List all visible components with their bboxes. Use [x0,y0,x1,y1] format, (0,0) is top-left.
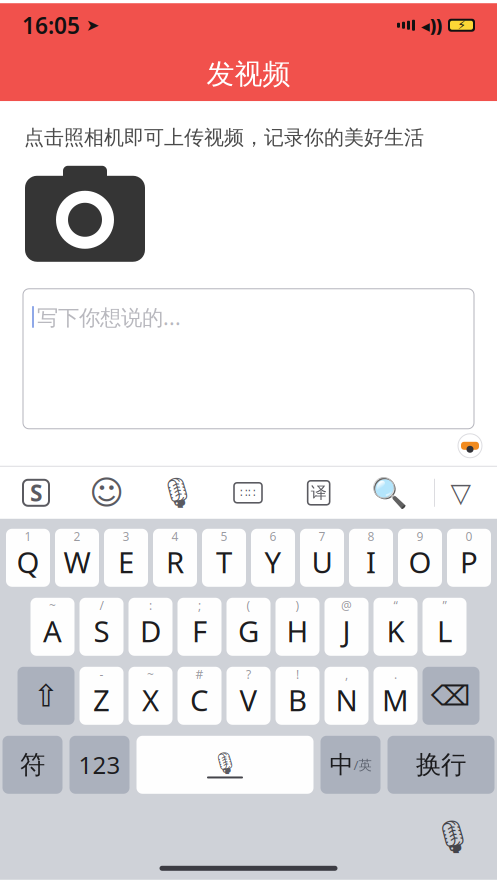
staticText: /英 [353,756,371,774]
staticText: K [386,611,404,650]
button[interactable]: 输入法设置 [10,467,62,519]
staticText: I [366,542,376,581]
staticText: B [288,680,307,719]
button[interactable]: 9 [398,529,442,587]
staticText: W [63,542,90,581]
staticText: S [30,478,42,508]
button[interactable]: ~ [30,598,74,656]
staticText: T [216,542,232,581]
button[interactable]: 删除 [422,667,479,725]
staticText: 译 [311,483,327,503]
staticText: # [195,666,203,682]
staticText: ⚡︎ [457,18,465,32]
button[interactable]: 空格 [136,736,313,794]
staticText: Y [264,542,281,581]
button[interactable]: ~ [128,667,172,725]
staticText: . [394,666,397,682]
button[interactable]: 6 [251,529,295,587]
staticText: C [190,680,209,719]
staticText: ! [296,666,299,682]
staticText: 8 [367,528,374,544]
button[interactable]: / [79,598,123,656]
button[interactable]: 1 [6,529,50,587]
staticText: 点击照相机即可上传视频，记录你的美好生活 [24,125,424,150]
staticText: - [99,666,103,682]
staticText: 换行 [416,749,466,780]
staticText: ☺ [89,474,124,512]
button[interactable]: 收起键盘 [435,467,487,519]
staticText: P [460,542,478,581]
button[interactable]: # [177,667,221,725]
button[interactable]: 7 [300,529,344,587]
staticText: F [192,611,207,650]
button[interactable]: ; [177,598,221,656]
staticText: 🎙 [211,751,238,775]
staticText: M [382,680,409,719]
button[interactable]: 语音输入 [151,467,203,519]
staticText: G [238,611,259,650]
button[interactable]: 123 [69,736,129,794]
button[interactable]: @ [324,598,368,656]
staticText: D [140,611,161,650]
button[interactable]: 3 [104,529,148,587]
staticText: 9 [416,528,423,544]
staticText: ⇧ [33,678,59,713]
staticText: / [99,597,103,613]
staticText: Q [16,542,39,581]
button[interactable]: 中英切换 [320,736,380,794]
staticText: ? [246,666,251,682]
staticText: 🔍 [371,476,408,509]
button[interactable]: . [373,667,417,725]
staticText: ◂)) [421,14,442,37]
staticText: 6 [269,528,276,544]
staticText: U [311,542,332,581]
button[interactable]: 4 [153,529,197,587]
staticText: O [408,542,431,581]
staticText: 3 [122,528,129,544]
button[interactable]: 符 [2,736,62,794]
button[interactable]: 翻译 [293,467,345,519]
staticText: V [239,680,257,719]
staticText: 中 [329,750,353,779]
staticText: “ [393,597,397,613]
staticText: ~ [49,597,56,613]
button[interactable]: 搜索 [363,467,415,519]
button[interactable]: 8 [349,529,393,587]
button[interactable]: 键盘布局 [222,467,274,519]
staticText: Z [93,680,110,719]
button[interactable]: 5 [202,529,246,587]
staticText: ; [198,597,201,613]
staticText: ▽ [450,478,471,508]
button[interactable]: 换行 [387,736,494,794]
staticText: S [93,611,109,650]
staticText: 写下你想说的... [37,303,181,331]
staticText: 1 [24,528,31,544]
button[interactable]: - [79,667,123,725]
button[interactable]: ” [422,598,466,656]
button[interactable]: 2 [55,529,99,587]
button[interactable]: 打开相机 [21,162,149,266]
staticText: ⌫ [431,680,471,712]
staticText: 7 [318,528,325,544]
button[interactable]: 表情 [458,434,482,458]
button[interactable]: : [128,598,172,656]
staticText: L [437,611,452,650]
button[interactable]: , [324,667,368,725]
staticText: 16:05 [22,10,80,40]
button[interactable]: Shift [17,667,74,725]
staticText: 符 [20,749,45,780]
button[interactable]: ? [226,667,270,725]
staticText: ” [442,597,446,613]
staticText: ( [246,597,250,613]
button[interactable]: “ [373,598,417,656]
button[interactable]: ( [226,598,270,656]
button[interactable]: 表情 [81,467,133,519]
staticText: 2 [73,528,80,544]
button[interactable]: ! [275,667,319,725]
button[interactable]: ) [275,598,319,656]
staticText: E [118,542,134,581]
button[interactable]: 0 [447,529,491,587]
staticText: N [335,680,357,719]
staticText: ∷∷ [240,486,256,500]
button[interactable]: 听写 [431,815,475,859]
